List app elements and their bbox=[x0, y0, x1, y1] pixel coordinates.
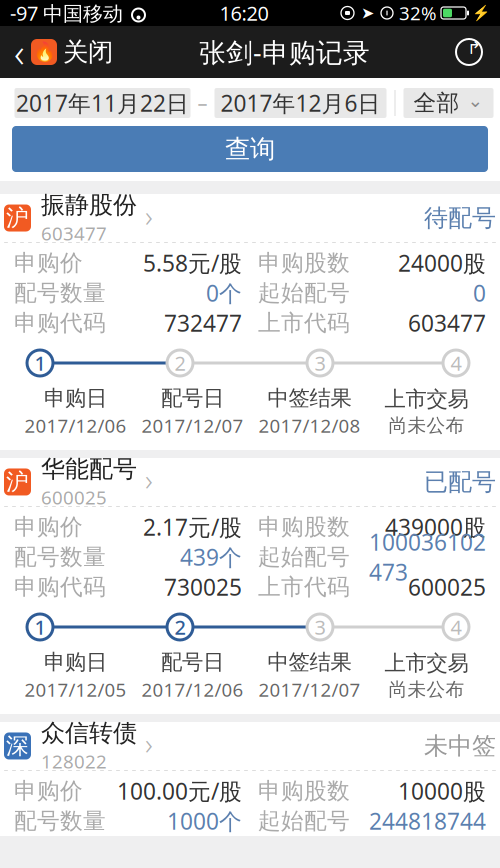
staticText: 待配号 bbox=[424, 203, 496, 233]
staticText: 732477 bbox=[164, 308, 242, 338]
staticText: 申购股数 bbox=[258, 777, 350, 805]
staticText: 配号数量 bbox=[14, 543, 106, 571]
staticText: 🔥 bbox=[32, 41, 55, 63]
staticText: 查询 bbox=[225, 133, 275, 164]
staticText: 100036102473 bbox=[369, 527, 486, 587]
staticText: 沪 bbox=[6, 204, 29, 232]
staticText: 已配号 bbox=[424, 467, 496, 497]
staticText: 2017/12/07 bbox=[141, 413, 243, 438]
staticText: ‹ bbox=[14, 25, 25, 78]
staticText: 上市交易 bbox=[384, 386, 468, 412]
staticText: 起始配号 bbox=[258, 543, 350, 571]
staticText: 全部 bbox=[413, 89, 459, 117]
staticText: 申购股数 bbox=[258, 249, 350, 277]
staticText: 申购价 bbox=[14, 513, 83, 541]
staticText: 配号数量 bbox=[14, 279, 106, 307]
staticText: 起始配号 bbox=[258, 807, 350, 835]
staticText: 3 bbox=[314, 350, 325, 376]
staticText: 439个 bbox=[180, 542, 242, 572]
staticText: 2 bbox=[174, 350, 185, 376]
button[interactable]: ‹ bbox=[0, 19, 113, 84]
staticText: 申购价 bbox=[14, 777, 83, 805]
staticText: 3 bbox=[314, 614, 325, 640]
staticText: 上市代码 bbox=[258, 573, 350, 601]
staticText: 深 bbox=[6, 732, 29, 760]
staticText: 4 bbox=[450, 350, 461, 376]
staticText: 730025 bbox=[164, 572, 242, 602]
button[interactable]: 深 bbox=[0, 722, 500, 770]
staticText: 2017/12/05 bbox=[24, 677, 126, 702]
staticText: 2017/12/07 bbox=[258, 677, 360, 702]
button[interactable]: 查询 bbox=[12, 126, 488, 172]
button[interactable]: 沪 bbox=[0, 458, 500, 506]
staticText: 起始配号 bbox=[258, 279, 350, 307]
staticText: ➤ bbox=[361, 4, 374, 22]
staticText: 振静股份 bbox=[41, 190, 137, 220]
staticText: 尚未公布 bbox=[388, 414, 464, 437]
staticText: 2017/12/06 bbox=[141, 677, 243, 702]
staticText: 600025 bbox=[408, 572, 486, 602]
staticText: 100.00元/股 bbox=[117, 776, 242, 806]
staticText: 配号日 bbox=[161, 385, 224, 411]
staticText: 244818744 bbox=[369, 806, 486, 836]
staticText: 2017/12/08 bbox=[258, 413, 360, 438]
staticText: 2017/12/06 bbox=[24, 413, 126, 438]
staticText: 沪 bbox=[6, 468, 29, 496]
staticText: – bbox=[197, 90, 207, 116]
staticText: › bbox=[145, 460, 153, 499]
staticText: ⌄ bbox=[467, 90, 483, 111]
staticText: 申购日 bbox=[44, 385, 107, 411]
staticText: 1000个 bbox=[167, 806, 242, 836]
staticText: 配号数量 bbox=[14, 807, 106, 835]
staticText: 1 bbox=[34, 350, 45, 376]
staticText: 2.17元/股 bbox=[143, 512, 242, 542]
staticText: ↱ bbox=[467, 38, 482, 58]
staticText: 上市代码 bbox=[258, 309, 350, 337]
staticText: 32% bbox=[399, 1, 437, 25]
staticText: ⚡ bbox=[472, 5, 490, 21]
staticText: 0个 bbox=[206, 278, 242, 308]
staticText: 2017年11月22日 bbox=[16, 88, 189, 118]
staticText: 603477 bbox=[408, 308, 486, 338]
staticText: 未中签 bbox=[424, 731, 496, 761]
staticText: 关闭 bbox=[63, 36, 113, 67]
staticText: 4 bbox=[450, 614, 461, 640]
button[interactable]: 2017年12月6日 bbox=[214, 88, 386, 118]
staticText: 申购代码 bbox=[14, 309, 106, 337]
staticText: 2017年12月6日 bbox=[220, 88, 380, 118]
staticText: 中签结果 bbox=[267, 385, 351, 411]
staticText: 众信转债 bbox=[41, 718, 137, 748]
staticText: 439000股 bbox=[385, 512, 486, 542]
staticText: 16:20 bbox=[219, 0, 268, 26]
button[interactable]: 2017年11月22日 bbox=[14, 88, 190, 118]
staticText: 5.58元/股 bbox=[143, 248, 242, 278]
staticText: -97 中国移动 bbox=[10, 0, 123, 26]
staticText: 1 bbox=[34, 614, 45, 640]
staticText: 申购日 bbox=[44, 649, 107, 675]
staticText: 中签结果 bbox=[267, 649, 351, 675]
staticText: 600025 bbox=[41, 485, 107, 510]
staticText: 张剑-申购记录 bbox=[199, 34, 370, 70]
staticText: 申购股数 bbox=[258, 513, 350, 541]
staticText: 申购代码 bbox=[14, 573, 106, 601]
staticText: 尚未公布 bbox=[388, 678, 464, 701]
staticText: 24000股 bbox=[398, 248, 486, 278]
staticText: 配号日 bbox=[161, 649, 224, 675]
button[interactable]: 刷新 bbox=[456, 31, 500, 73]
staticText: › bbox=[145, 196, 153, 235]
staticText: 603477 bbox=[41, 221, 107, 246]
staticText: 2 bbox=[174, 614, 185, 640]
button[interactable]: 沪 bbox=[0, 194, 500, 242]
staticText: › bbox=[145, 724, 153, 763]
staticText: 华能配号 bbox=[41, 454, 137, 484]
staticText: 128022 bbox=[41, 749, 107, 774]
staticText: 申购价 bbox=[14, 249, 83, 277]
button[interactable]: 全部 bbox=[403, 88, 493, 118]
staticText: 0 bbox=[473, 278, 486, 308]
staticText: 10000股 bbox=[398, 776, 486, 806]
staticText: 上市交易 bbox=[384, 650, 468, 676]
